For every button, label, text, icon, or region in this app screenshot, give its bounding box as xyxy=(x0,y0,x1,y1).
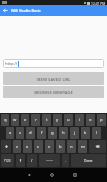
staticText: / xyxy=(31,158,33,163)
staticText: z xyxy=(16,144,18,150)
button[interactable]: q xyxy=(1,114,9,126)
button[interactable]: g xyxy=(48,127,57,139)
staticText: v xyxy=(48,144,51,150)
staticText: e xyxy=(24,117,27,123)
button[interactable]: y xyxy=(53,114,62,126)
button[interactable]: Recents xyxy=(63,168,86,182)
staticText: Wifi Studio Basic xyxy=(11,8,41,13)
staticText: c xyxy=(37,144,40,150)
staticText: ?123 xyxy=(4,159,11,163)
staticText: h xyxy=(62,130,65,136)
staticText: l xyxy=(96,130,98,136)
button[interactable]: c xyxy=(34,140,43,153)
button[interactable]: f xyxy=(37,127,46,139)
button[interactable]: z xyxy=(13,140,21,153)
button[interactable]: Backspace xyxy=(89,140,106,153)
button[interactable]: Back xyxy=(0,5,11,16)
button[interactable]: b xyxy=(56,140,65,153)
button[interactable]: m xyxy=(78,140,87,153)
button[interactable]: VIEW SAVED URL xyxy=(3,72,104,85)
button[interactable]: t xyxy=(42,114,51,126)
button[interactable]: Done xyxy=(71,154,106,167)
button[interactable]: p xyxy=(97,114,106,126)
staticText: q xyxy=(4,117,7,123)
button[interactable]: ?123 xyxy=(1,154,14,167)
button[interactable]: e xyxy=(21,114,29,126)
staticText: d xyxy=(29,130,32,136)
staticText: k xyxy=(84,130,87,136)
button[interactable]: / xyxy=(27,154,37,167)
staticText: t xyxy=(46,117,48,123)
button[interactable]: . xyxy=(62,154,69,167)
staticText: BROWSE WEBPAGE xyxy=(34,89,73,95)
staticText: x xyxy=(26,144,29,150)
button[interactable]: Back xyxy=(17,168,40,182)
button[interactable]: Shift xyxy=(1,140,11,153)
button[interactable]: i xyxy=(75,114,84,126)
staticText: 12:41 PM xyxy=(91,1,106,5)
button[interactable]: a xyxy=(6,127,14,139)
staticText: p xyxy=(100,117,103,123)
button[interactable]: s xyxy=(16,127,24,139)
button[interactable]: Space xyxy=(39,154,60,167)
button[interactable]: BROWSE WEBPAGE xyxy=(3,86,104,98)
staticText: VIEW SAVED URL xyxy=(36,76,71,82)
button[interactable]: n xyxy=(67,140,76,153)
staticText: i xyxy=(79,117,81,123)
staticText: w xyxy=(13,117,17,123)
button[interactable]: http:// xyxy=(3,59,104,68)
button[interactable]: k xyxy=(81,127,90,139)
staticText: u xyxy=(67,117,70,123)
button[interactable]: d xyxy=(26,127,35,139)
button[interactable]: u xyxy=(64,114,73,126)
staticText: http:// xyxy=(5,61,18,67)
staticText: s xyxy=(19,130,22,136)
button[interactable]: Voice input xyxy=(16,154,25,167)
staticText: n xyxy=(70,144,73,150)
staticText: m xyxy=(81,144,85,150)
button[interactable]: l xyxy=(92,127,101,139)
staticText: o xyxy=(89,117,92,123)
staticText: b xyxy=(59,144,62,150)
staticText: y xyxy=(56,117,59,123)
button[interactable]: w xyxy=(11,114,19,126)
button[interactable]: o xyxy=(86,114,95,126)
staticText: a xyxy=(9,130,12,136)
button[interactable]: Home xyxy=(40,168,63,182)
button[interactable]: j xyxy=(70,127,79,139)
staticText: j xyxy=(74,130,76,136)
staticText: Done xyxy=(84,158,93,163)
staticText: r xyxy=(35,117,37,123)
staticText: g xyxy=(51,130,54,136)
button[interactable]: h xyxy=(59,127,68,139)
button[interactable]: r xyxy=(31,114,40,126)
staticText: f xyxy=(41,130,43,136)
staticText: . xyxy=(65,158,66,163)
button[interactable]: x xyxy=(23,140,32,153)
button[interactable]: v xyxy=(45,140,54,153)
